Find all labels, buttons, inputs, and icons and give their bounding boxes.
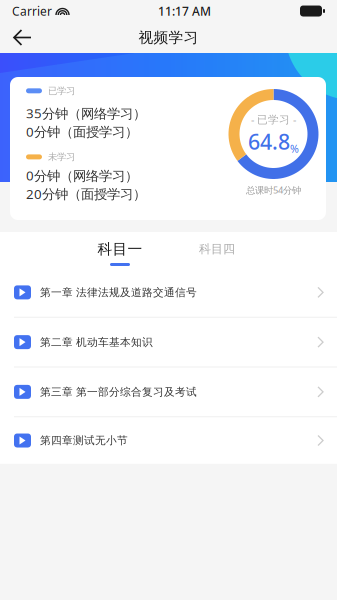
staticText: 科目一	[97, 240, 142, 258]
staticText: - 已学习 -	[251, 112, 296, 126]
button[interactable]: 第二章 机动车基本知识	[0, 318, 337, 368]
button[interactable]: 科目四	[168, 232, 265, 268]
staticText: 20分钟（面授学习）	[26, 185, 146, 203]
staticText: 第一章 法律法规及道路交通信号	[40, 286, 197, 299]
staticText: 第四章测试无小节	[40, 434, 128, 447]
staticText: 科目四	[199, 242, 235, 256]
staticText: 0分钟（网络学习）	[26, 166, 138, 184]
staticText: 第二章 机动车基本知识	[40, 336, 153, 349]
staticText: 11:17 AM	[158, 3, 211, 19]
staticText: 总课时54分钟	[246, 184, 301, 196]
button[interactable]: 第一章 法律法规及道路交通信号	[0, 268, 337, 318]
staticText: 已学习	[48, 85, 75, 97]
staticText: 64.8	[248, 127, 290, 156]
staticText: %	[290, 142, 299, 156]
staticText: 未学习	[48, 151, 75, 163]
staticText: 35分钟（网络学习）	[26, 104, 146, 122]
button[interactable]: Back	[0, 22, 45, 53]
button[interactable]: 科目一	[71, 232, 168, 268]
staticText: 第三章 第一部分综合复习及考试	[40, 385, 197, 398]
staticText: 0分钟（面授学习）	[26, 123, 138, 140]
button[interactable]: 第三章 第一部分综合复习及考试	[0, 367, 337, 417]
button[interactable]: 第四章测试无小节	[0, 417, 337, 464]
staticText: Carrier	[12, 3, 52, 19]
staticText: 视频学习	[138, 28, 198, 46]
